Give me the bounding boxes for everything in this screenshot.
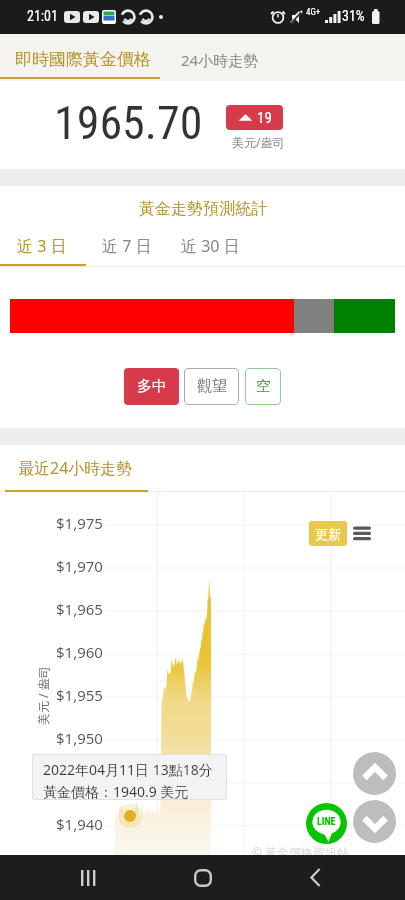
button[interactable]: Share on LINE — [306, 803, 347, 844]
button[interactable]: 觀望 — [184, 368, 239, 405]
button[interactable]: 多中 — [124, 368, 179, 405]
button[interactable]: Recents — [65, 855, 113, 900]
staticText: 21:01 — [27, 8, 58, 24]
staticText: 美元 / 盎司 — [35, 666, 51, 725]
staticText: $1,950 — [56, 728, 103, 748]
staticText: 近 30 日 — [181, 235, 240, 257]
button[interactable]: 近 3 日 — [0, 229, 86, 267]
staticText: 即時國際黃金價格 — [15, 49, 151, 70]
button[interactable]: 更新 — [309, 521, 347, 546]
staticText: 觀望 — [197, 377, 227, 396]
staticText: 31% — [342, 8, 365, 24]
staticText: $1,945 — [56, 771, 103, 791]
staticText: 黃金走勢預測統計 — [139, 199, 267, 219]
button[interactable]: Menu — [353, 521, 371, 546]
staticText: $1,940 — [56, 814, 103, 834]
button[interactable]: Home — [179, 855, 227, 900]
staticText: 更新 — [315, 526, 341, 542]
staticText: $1,955 — [56, 685, 103, 705]
staticText: 空 — [256, 377, 271, 396]
staticText: 24小時走勢 — [181, 50, 259, 70]
button[interactable]: 空 — [245, 368, 281, 405]
staticText: © 黃金價格資訊站 — [252, 844, 350, 860]
button[interactable]: 即時國際黃金價格 — [0, 34, 168, 81]
staticText: $1,960 — [56, 642, 103, 662]
staticText: 19 — [257, 109, 272, 127]
staticText: 黃金價格：1940.9 美元 — [43, 782, 189, 800]
button[interactable]: Back — [292, 855, 340, 900]
button[interactable]: Scroll up — [353, 752, 396, 795]
button[interactable]: 近 7 日 — [86, 229, 168, 267]
staticText: 最近24小時走勢 — [18, 457, 133, 479]
staticText: 4G+ — [306, 7, 321, 18]
staticText: LINE — [317, 816, 336, 828]
staticText: 美元/盎司 — [232, 134, 285, 150]
staticText: 多中 — [137, 377, 167, 396]
staticText: 1965.70 — [54, 96, 203, 150]
staticText: $1,965 — [56, 599, 103, 619]
staticText: $1,975 — [56, 513, 103, 533]
staticText: 近 7 日 — [102, 235, 152, 257]
staticText: 近 3 日 — [17, 235, 67, 257]
button[interactable]: 近 30 日 — [168, 229, 256, 267]
staticText: 2022年04月11日 13點18分 — [43, 760, 213, 779]
button[interactable]: 24小時走勢 — [168, 34, 288, 81]
button[interactable]: Scroll down — [353, 800, 396, 843]
staticText: $1,970 — [56, 556, 103, 576]
